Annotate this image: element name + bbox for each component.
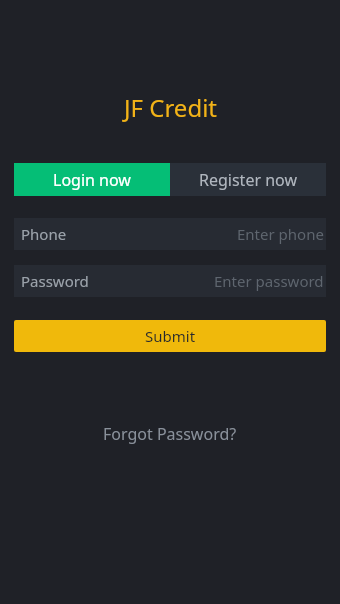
- button[interactable]: Login now: [14, 163, 170, 196]
- staticText: Register now: [199, 169, 298, 191]
- staticText: Login now: [53, 169, 131, 191]
- staticText: Enter password: [214, 271, 324, 291]
- button[interactable]: Forgot Password?: [103, 423, 237, 445]
- staticText: JF Credit: [124, 91, 217, 124]
- button[interactable]: Password: [14, 265, 326, 297]
- staticText: Password: [21, 271, 89, 291]
- button[interactable]: Phone: [14, 218, 326, 250]
- staticText: Submit: [145, 326, 196, 346]
- button[interactable]: Register now: [170, 163, 326, 196]
- staticText: Phone: [21, 224, 67, 244]
- button[interactable]: Submit: [14, 320, 326, 352]
- staticText: Enter phone: [237, 224, 324, 244]
